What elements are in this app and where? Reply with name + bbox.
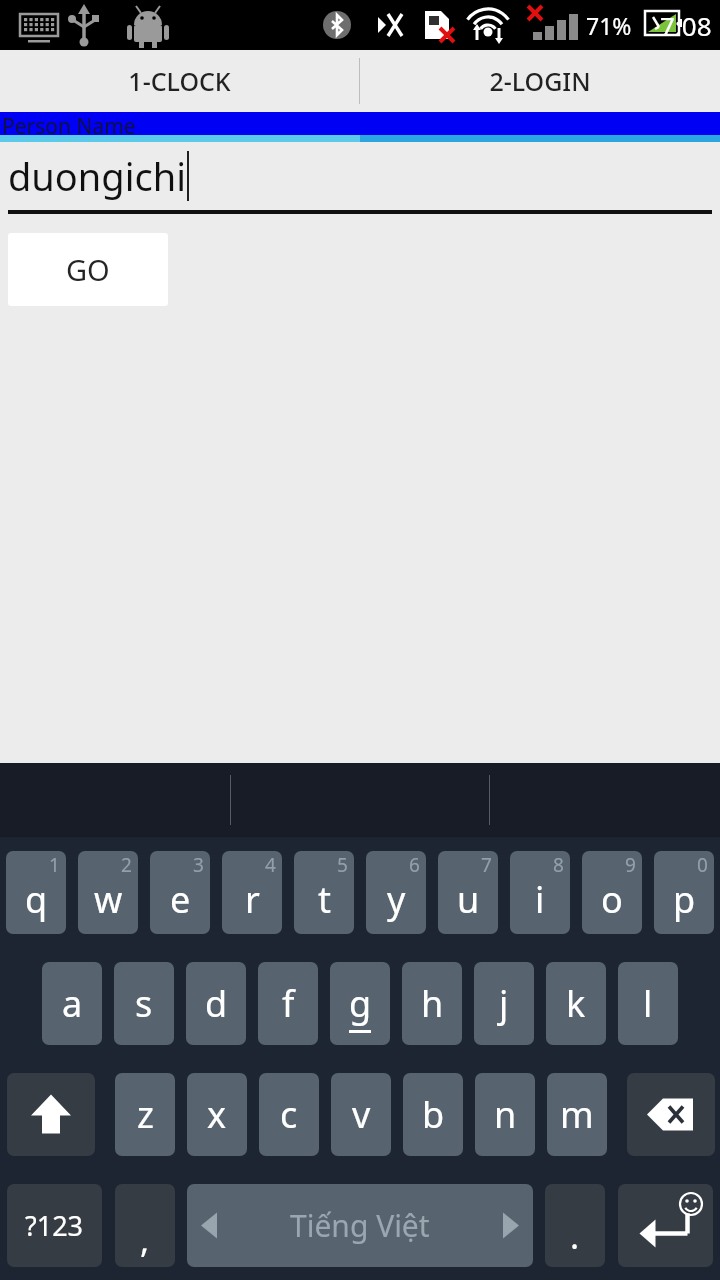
- staticText: g: [349, 979, 372, 1028]
- staticText: p: [673, 875, 696, 924]
- staticText: Person Name: [2, 112, 136, 141]
- button[interactable]: GO: [8, 233, 168, 306]
- staticText: v: [352, 1090, 371, 1139]
- staticText: k: [566, 979, 586, 1028]
- staticText: 7: [481, 852, 492, 878]
- staticText: 0: [697, 852, 708, 878]
- staticText: ,: [140, 1217, 150, 1263]
- button[interactable]: Tiếng Việt: [187, 1184, 533, 1267]
- button[interactable]: 0: [654, 851, 714, 934]
- button[interactable]: 2-LOGIN: [360, 50, 720, 112]
- staticText: 8: [553, 852, 564, 878]
- staticText: 71%: [586, 10, 632, 41]
- staticText: d: [205, 979, 228, 1028]
- staticText: 4: [265, 852, 276, 878]
- button[interactable]: l: [618, 962, 678, 1045]
- button[interactable]: Backspace: [627, 1073, 715, 1156]
- button[interactable]: ,: [115, 1184, 175, 1267]
- button[interactable]: g: [330, 962, 390, 1045]
- button[interactable]: d: [186, 962, 246, 1045]
- button[interactable]: 1: [6, 851, 66, 934]
- button[interactable]: 5: [294, 851, 354, 934]
- button[interactable]: 2: [78, 851, 138, 934]
- button[interactable]: a: [42, 962, 102, 1045]
- staticText: x: [207, 1090, 227, 1139]
- button[interactable]: Enter: [618, 1184, 713, 1267]
- staticText: o: [601, 875, 623, 924]
- staticText: r: [245, 875, 260, 924]
- staticText: j: [499, 979, 509, 1028]
- button[interactable]: .: [545, 1184, 605, 1267]
- staticText: l: [643, 979, 653, 1028]
- button[interactable]: 9: [582, 851, 642, 934]
- button[interactable]: b: [403, 1073, 463, 1156]
- button[interactable]: 3: [150, 851, 210, 934]
- button[interactable]: 6: [366, 851, 426, 934]
- button[interactable]: c: [259, 1073, 319, 1156]
- staticText: t: [318, 875, 331, 924]
- staticText: y: [387, 875, 406, 924]
- staticText: 2: [121, 852, 132, 878]
- staticText: .: [570, 1213, 580, 1259]
- staticText: n: [494, 1090, 517, 1139]
- staticText: 1-CLOCK: [128, 64, 231, 98]
- button[interactable]: x: [187, 1073, 247, 1156]
- staticText: q: [25, 875, 48, 924]
- staticText: w: [94, 875, 123, 924]
- staticText: u: [457, 875, 480, 924]
- button[interactable]: v: [331, 1073, 391, 1156]
- staticText: 6: [409, 852, 420, 878]
- button[interactable]: 1-CLOCK: [0, 50, 359, 112]
- button[interactable]: 8: [510, 851, 570, 934]
- button[interactable]: 7: [438, 851, 498, 934]
- button[interactable]: 4: [222, 851, 282, 934]
- staticText: e: [170, 875, 191, 924]
- button[interactable]: duongichi: [0, 142, 720, 210]
- button[interactable]: f: [258, 962, 318, 1045]
- staticText: 1: [49, 852, 60, 878]
- staticText: Tiếng Việt: [290, 1205, 430, 1246]
- staticText: z: [137, 1090, 154, 1139]
- button[interactable]: k: [546, 962, 606, 1045]
- button[interactable]: m: [547, 1073, 607, 1156]
- button[interactable]: j: [474, 962, 534, 1045]
- staticText: b: [422, 1090, 445, 1139]
- staticText: 3: [193, 852, 204, 878]
- button[interactable]: ?123: [7, 1184, 102, 1267]
- staticText: duongichi: [8, 150, 187, 202]
- staticText: 2-LOGIN: [489, 64, 591, 98]
- button[interactable]: h: [402, 962, 462, 1045]
- button[interactable]: z: [115, 1073, 175, 1156]
- staticText: GO: [66, 250, 110, 289]
- staticText: 5: [337, 852, 348, 878]
- button[interactable]: Shift: [7, 1073, 95, 1156]
- staticText: ?123: [25, 1207, 84, 1244]
- staticText: 9: [625, 852, 636, 878]
- staticText: a: [62, 979, 83, 1028]
- staticText: m: [560, 1090, 594, 1139]
- staticText: f: [282, 979, 295, 1028]
- button[interactable]: s: [114, 962, 174, 1045]
- staticText: i: [535, 875, 545, 924]
- staticText: s: [135, 979, 153, 1028]
- staticText: h: [421, 979, 444, 1028]
- staticText: 7:08: [660, 8, 712, 43]
- button[interactable]: n: [475, 1073, 535, 1156]
- staticText: c: [280, 1090, 298, 1139]
